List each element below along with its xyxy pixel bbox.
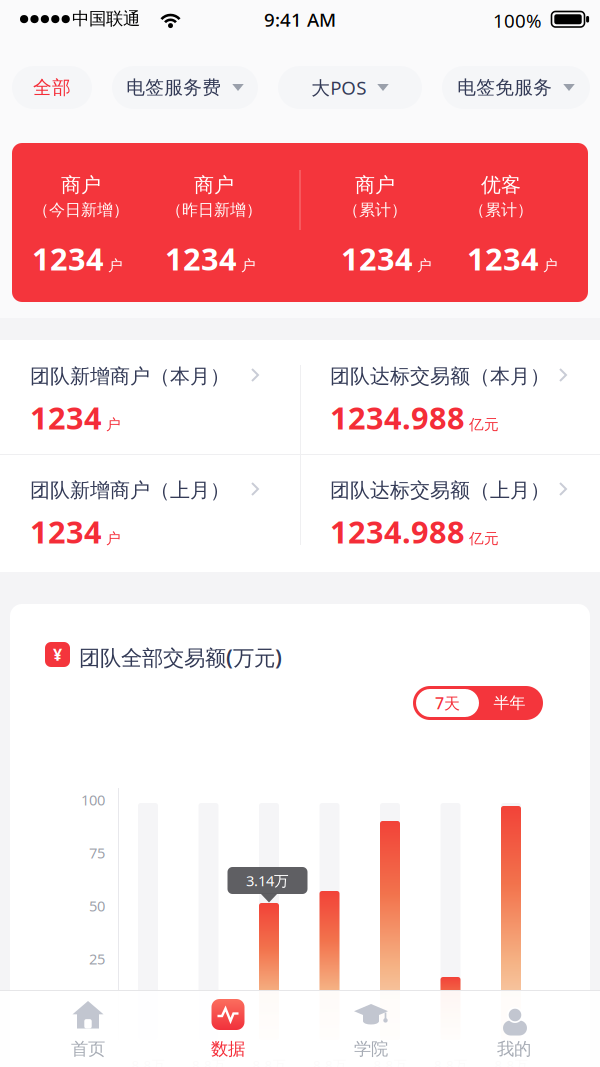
staticText: 亿元 (469, 530, 499, 548)
button[interactable]: 团队新增商户（上月） (0, 454, 288, 568)
staticText: 商户 (355, 173, 395, 197)
staticText: 7天 (435, 692, 460, 714)
staticText: 户 (241, 257, 256, 275)
staticText: 8.8万 (494, 1056, 527, 1067)
staticText: 户 (108, 257, 123, 275)
staticText: 3.14万 (246, 871, 289, 890)
button[interactable]: 全部 (12, 66, 92, 109)
staticText: 户 (106, 416, 121, 434)
staticText: 75 (89, 843, 105, 862)
staticText: 50 (89, 896, 105, 915)
button[interactable]: 学院 (316, 991, 426, 1063)
staticText: 团队新增商户（上月） (30, 478, 230, 503)
staticText: 全部 (33, 76, 71, 99)
button[interactable]: 团队新增商户（本月） (0, 340, 288, 454)
staticText: 大POS (311, 75, 366, 100)
staticText: 1234 (32, 238, 104, 279)
staticText: 优客 (481, 173, 521, 197)
staticText: 团队新增商户（本月） (30, 364, 230, 389)
staticText: 1234 (165, 238, 237, 279)
staticText: 团队达标交易额（本月） (330, 364, 550, 389)
staticText: 9:41 AM (264, 7, 336, 32)
button[interactable]: 电签免服务 (442, 66, 590, 109)
staticText: 1234 (30, 397, 102, 438)
staticText: 数据 (211, 1038, 245, 1060)
staticText: 1234 (467, 238, 539, 279)
staticText: 1234.988 (330, 511, 465, 552)
button[interactable]: 数据 (173, 991, 283, 1063)
staticText: 8.8万 (373, 1056, 406, 1067)
staticText: 1234.988 (330, 397, 465, 438)
staticText: 团队全部交易额(万元) (79, 643, 282, 671)
button[interactable]: 团队达标交易额（上月） (300, 454, 588, 568)
staticText: 首页 (71, 1038, 105, 1060)
staticText: 8.8万 (192, 1056, 225, 1067)
staticText: 100 (81, 790, 105, 809)
staticText: 亿元 (469, 416, 499, 434)
staticText: 电签免服务 (457, 76, 552, 99)
staticText: 学院 (354, 1038, 388, 1060)
button[interactable]: 大POS (278, 66, 422, 109)
button[interactable]: 7天 (416, 689, 479, 717)
staticText: 半年 (493, 693, 525, 713)
staticText: 商户 (61, 173, 101, 197)
staticText: 户 (417, 257, 432, 275)
staticText: 团队达标交易额（上月） (330, 478, 550, 503)
staticText: 户 (543, 257, 558, 275)
staticText: （昨日新增） (166, 200, 262, 220)
staticText: 中国联通 (72, 8, 140, 29)
staticText: 1234 (30, 511, 102, 552)
staticText: 商户 (194, 173, 234, 197)
staticText: 100% (493, 8, 542, 33)
staticText: （今日新增） (33, 200, 129, 220)
staticText: 25 (89, 949, 105, 968)
button[interactable]: 团队达标交易额（本月） (300, 340, 588, 454)
button[interactable]: 电签服务费 (112, 66, 258, 109)
staticText: ¥ (53, 644, 62, 665)
staticText: 1234 (341, 238, 413, 279)
button[interactable]: 半年 (479, 689, 540, 717)
button[interactable]: 首页 (33, 991, 143, 1063)
staticText: 我的 (497, 1038, 531, 1060)
staticText: （累计） (343, 200, 407, 220)
button[interactable]: 我的 (459, 991, 569, 1063)
staticText: （累计） (469, 200, 533, 220)
staticText: 电签服务费 (126, 76, 221, 99)
staticText: 户 (106, 530, 121, 548)
